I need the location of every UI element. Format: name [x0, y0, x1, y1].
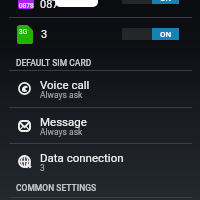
button[interactable]: SIM on/off toggle [122, 28, 179, 40]
button[interactable]: Voice call [0, 70, 200, 106]
staticText: Voice call [40, 78, 90, 91]
staticText: 3 [40, 163, 45, 173]
staticText: ON [160, 0, 172, 3]
staticText: 3 [41, 28, 48, 41]
staticText: 0878 [19, 2, 34, 10]
button[interactable]: SIM on/off toggle [122, 0, 179, 4]
staticText: COMMON SETTINGS [16, 183, 97, 193]
staticText: Always ask [40, 90, 83, 100]
staticText: Data connection [40, 151, 124, 164]
staticText: 3G [19, 28, 28, 36]
button[interactable]: Message [0, 107, 200, 143]
staticText: 087 [40, 0, 59, 11]
staticText: Always ask [40, 127, 83, 137]
staticText: Message [40, 115, 87, 128]
staticText: DEFAULT SIM CARD [16, 58, 92, 68]
button[interactable]: Data connection [0, 143, 200, 179]
staticText: ON [160, 30, 172, 39]
